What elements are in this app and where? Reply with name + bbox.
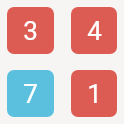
staticText: 3 xyxy=(23,16,38,46)
staticText: 1 xyxy=(87,79,102,109)
staticText: 4 xyxy=(87,16,102,46)
staticText: 7 xyxy=(23,79,38,109)
button[interactable]: 1 xyxy=(71,70,117,117)
button[interactable]: 4 xyxy=(71,7,117,54)
button[interactable]: 7 xyxy=(7,70,54,117)
button[interactable]: 3 xyxy=(7,7,54,54)
